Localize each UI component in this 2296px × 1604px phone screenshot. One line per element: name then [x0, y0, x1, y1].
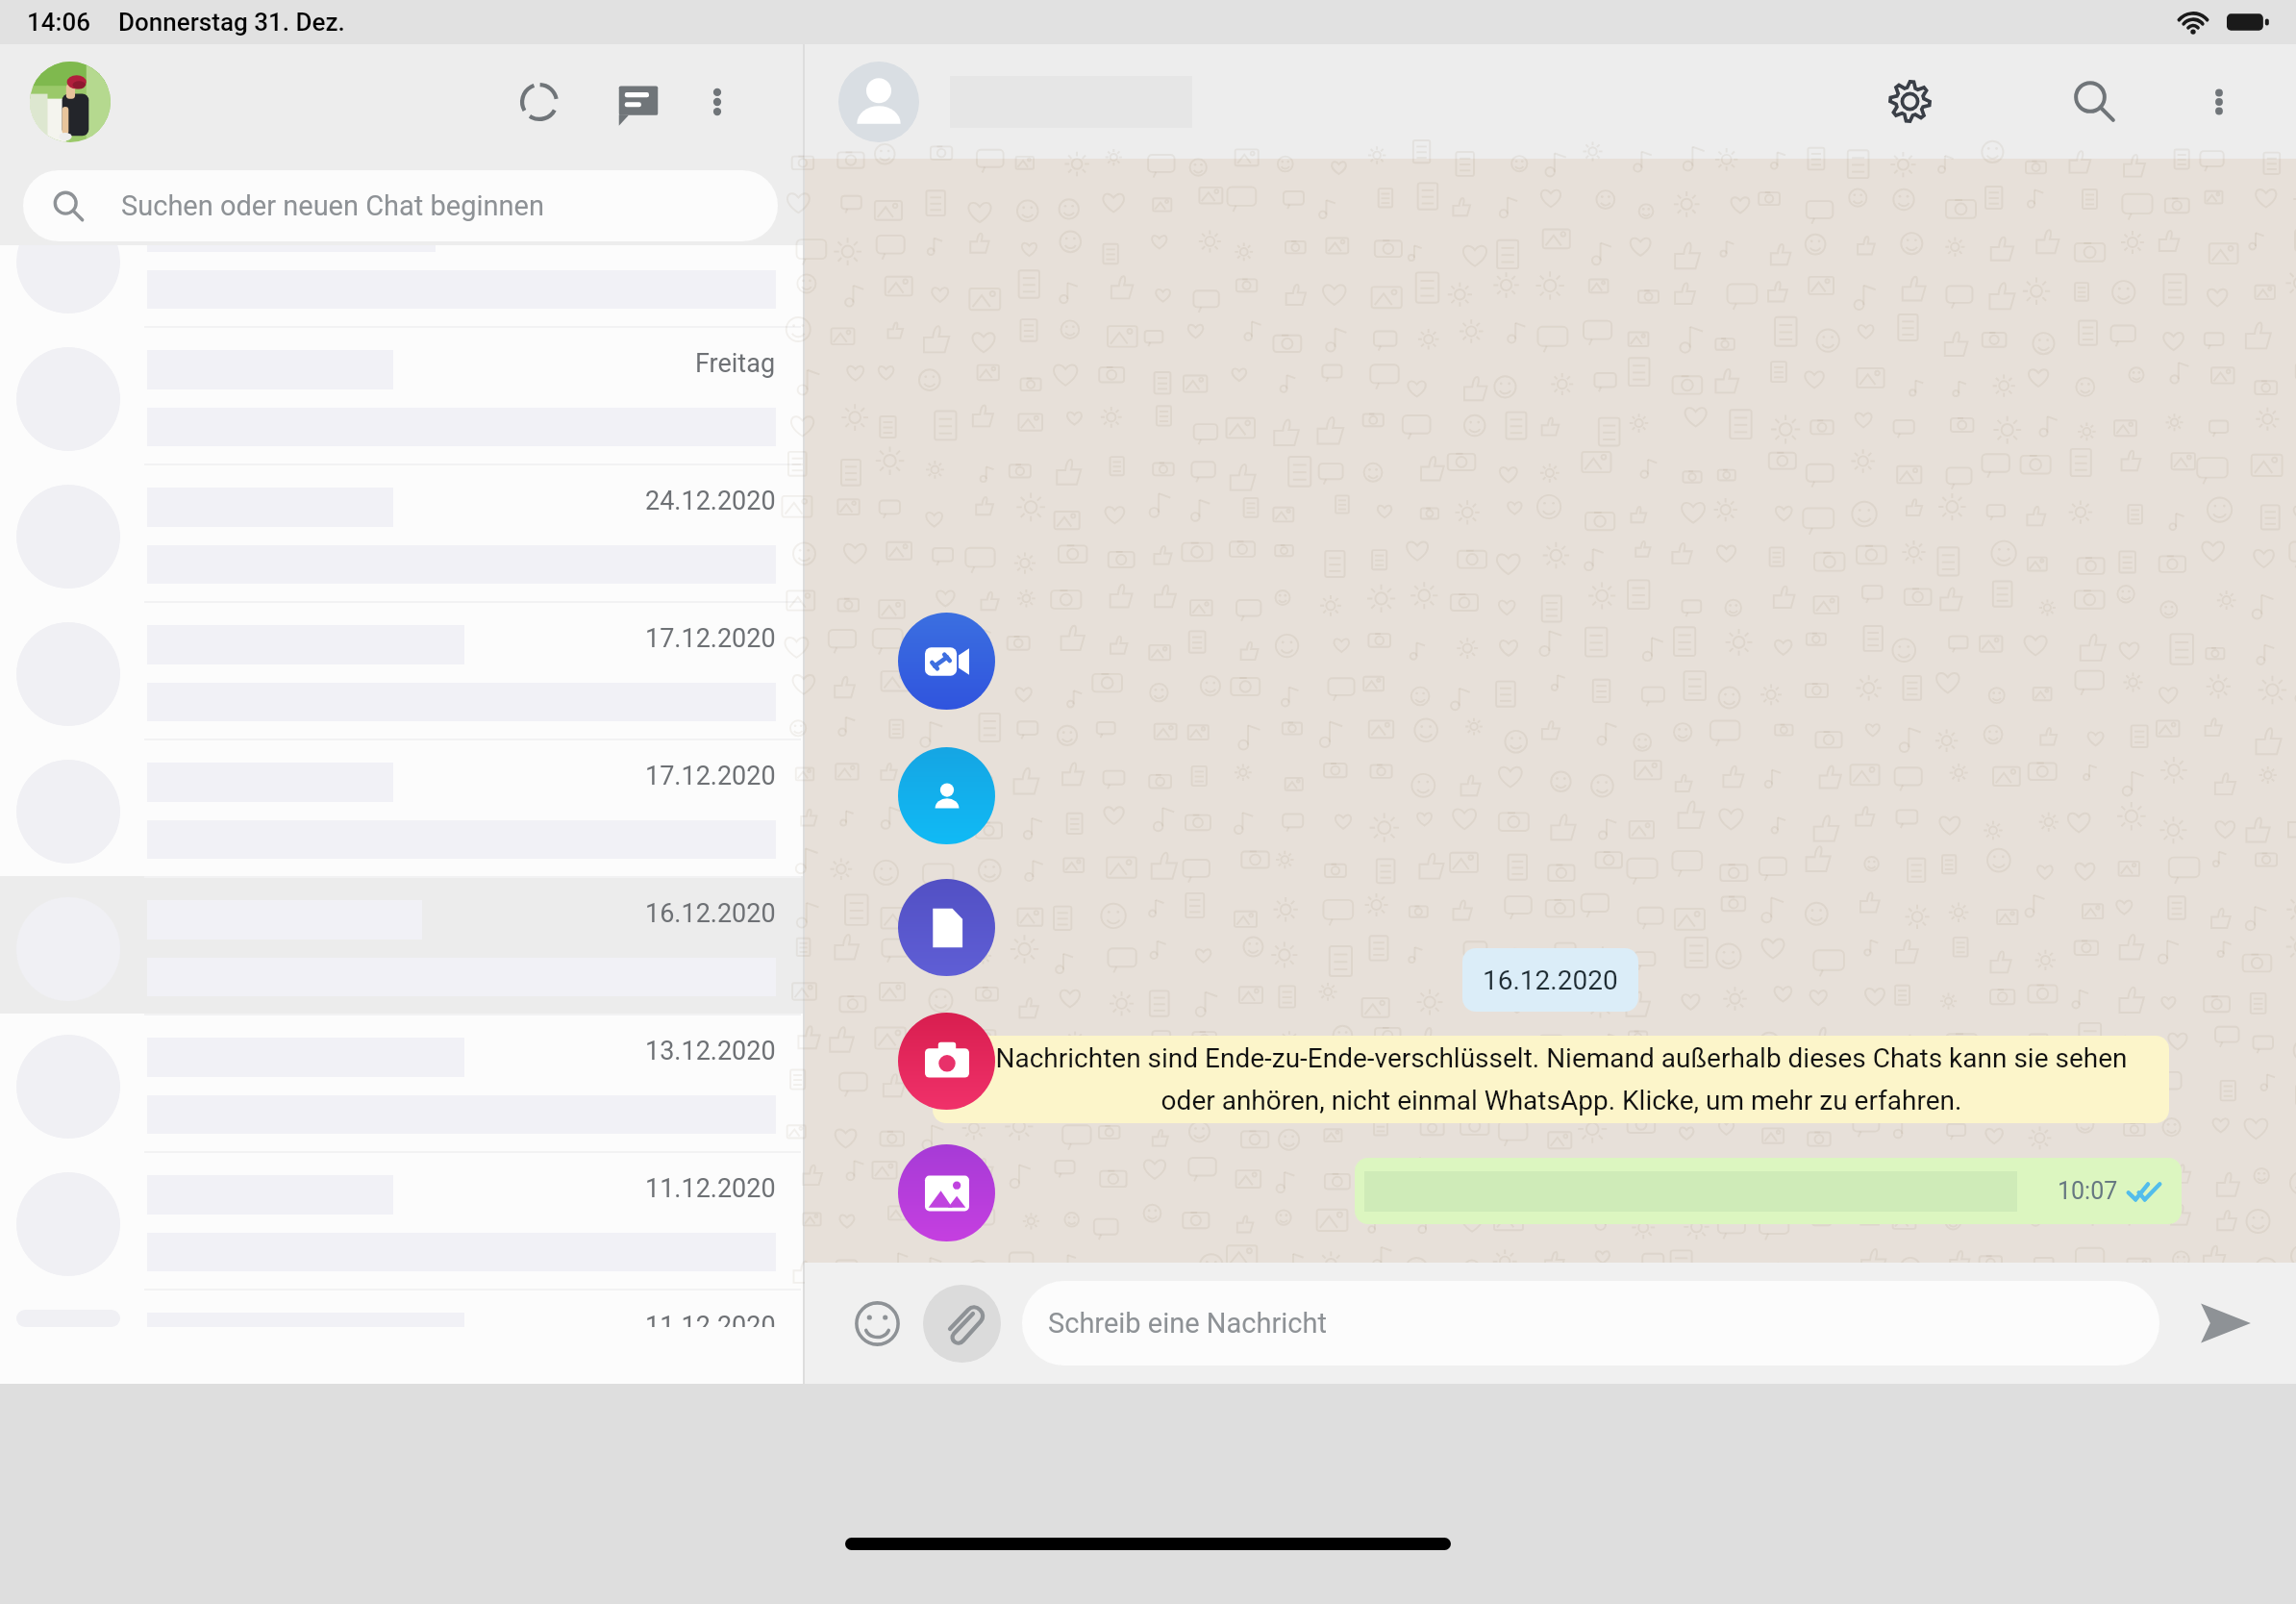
- button[interactable]: Einstellungen: [1875, 66, 1945, 137]
- button[interactable]: Suchen oder neuen Chat beginnen: [23, 170, 778, 241]
- staticText: 16.12.2020: [645, 898, 776, 929]
- button[interactable]: Anhängen: [923, 1285, 1001, 1363]
- button[interactable]: Status: [509, 71, 570, 133]
- button[interactable]: Kontakt: [838, 62, 919, 142]
- button[interactable]: Galerie: [898, 1144, 995, 1241]
- staticText: 17.12.2020: [645, 761, 776, 791]
- staticText: Nachrichten sind Ende-zu-Ende-verschlüss…: [967, 1042, 2156, 1116]
- button[interactable]: Videoanruf: [898, 613, 995, 710]
- button[interactable]: Senden: [2191, 1289, 2260, 1358]
- button[interactable]: Nachrichten sind Ende-zu-Ende-verschlüss…: [933, 1036, 2169, 1123]
- staticText: 16.12.2020: [1483, 965, 1618, 996]
- button[interactable]: Kamera: [898, 1013, 995, 1110]
- staticText: 10:07: [2058, 1177, 2118, 1205]
- staticText: 11.12.2020: [645, 1311, 776, 1327]
- button[interactable]: Mehr Optionen: [688, 73, 746, 131]
- staticText: 24.12.2020: [645, 486, 776, 516]
- button[interactable]: Mehr Optionen: [2191, 74, 2247, 130]
- button[interactable]: 16.12.2020: [0, 876, 803, 1014]
- button[interactable]: Neuer Chat: [605, 68, 672, 136]
- staticText: 14:06: [27, 8, 91, 37]
- staticText: 13.12.2020: [645, 1036, 776, 1066]
- staticText: Donnerstag 31. Dez.: [118, 8, 345, 37]
- button[interactable]: Home: [845, 1538, 1451, 1550]
- button[interactable]: Dokument: [898, 879, 995, 976]
- staticText: 11.12.2020: [645, 1173, 776, 1204]
- button[interactable]: 11.12.2020: [0, 1289, 803, 1327]
- button[interactable]: 11.12.2020: [0, 1151, 803, 1289]
- staticText: Suchen oder neuen Chat beginnen: [121, 189, 544, 222]
- staticText: 17.12.2020: [645, 623, 776, 654]
- button[interactable]: Suchen: [2061, 68, 2128, 135]
- button[interactable]: [0, 245, 803, 326]
- button[interactable]: 17.12.2020: [0, 601, 803, 739]
- button[interactable]: 17.12.2020: [0, 739, 803, 876]
- staticText: Freitag: [695, 348, 776, 379]
- button[interactable]: Freitag: [0, 326, 803, 464]
- button[interactable]: Emoji: [845, 1291, 909, 1355]
- button[interactable]: Profil: [30, 62, 111, 142]
- button[interactable]: 13.12.2020: [0, 1014, 803, 1151]
- button[interactable]: Kontakt: [898, 747, 995, 844]
- button[interactable]: Schreib eine Nachricht: [1022, 1281, 2159, 1366]
- staticText: Schreib eine Nachricht: [1048, 1307, 1327, 1340]
- button[interactable]: 24.12.2020: [0, 464, 803, 601]
